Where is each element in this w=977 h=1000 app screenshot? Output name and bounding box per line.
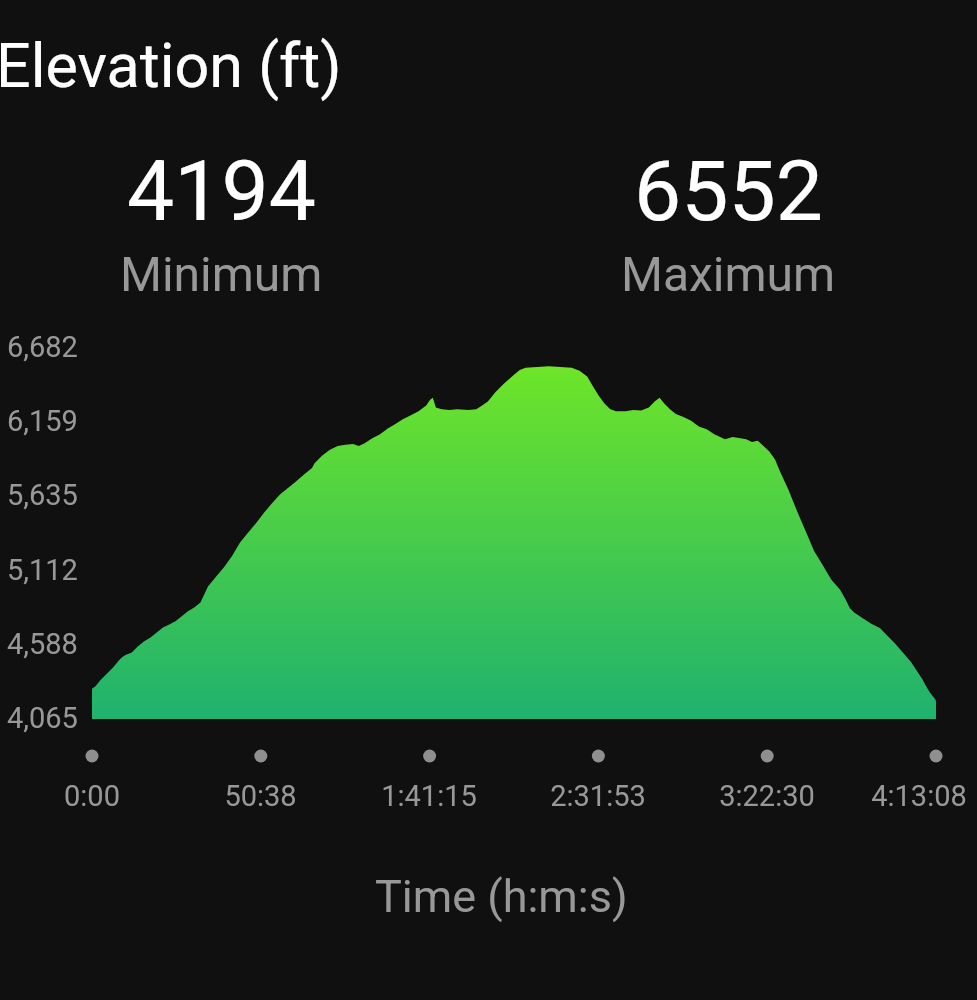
staticText: 0:00 [64, 779, 120, 813]
staticText: 5,635 [7, 478, 78, 512]
staticText: 6,682 [7, 330, 78, 364]
staticText: Elevation (ft) [0, 30, 342, 101]
staticText: 4,588 [7, 627, 78, 661]
staticText: 4194 [127, 142, 316, 240]
staticText: 1:41:15 [381, 779, 477, 813]
button[interactable]: Elevation profile chart [0, 320, 977, 740]
button[interactable]: 4194 [21, 142, 421, 296]
staticText: 6,159 [7, 404, 78, 438]
staticText: Maximum [621, 246, 836, 302]
staticText: 4:13:08 [871, 779, 967, 813]
staticText: 5,112 [7, 553, 78, 587]
staticText: 6552 [634, 142, 823, 240]
staticText: 3:22:30 [719, 779, 815, 813]
staticText: Time (h:m:s) [375, 870, 628, 923]
button[interactable]: 6552 [528, 142, 928, 296]
button[interactable]: Elevation (ft) [0, 26, 420, 104]
staticText: 2:31:53 [550, 779, 646, 813]
staticText: 4,065 [7, 701, 78, 735]
staticText: 50:38 [224, 779, 297, 813]
staticText: Minimum [120, 246, 323, 302]
